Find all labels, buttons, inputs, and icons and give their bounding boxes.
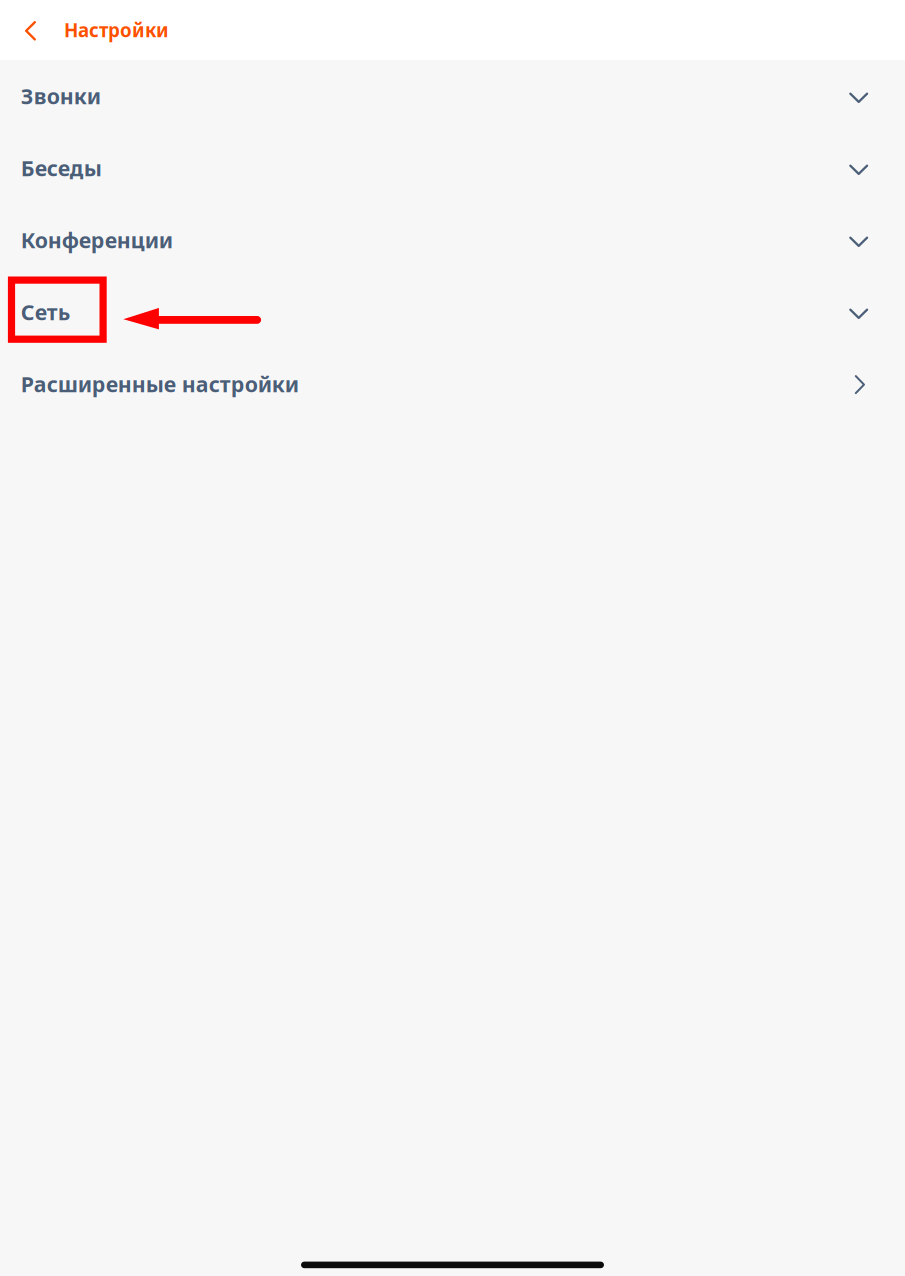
staticText: Сеть <box>21 298 71 326</box>
button[interactable]: Конференции <box>0 204 905 276</box>
staticText: Расширенные настройки <box>21 370 299 398</box>
button[interactable]: Беседы <box>0 132 905 204</box>
staticText: Конференции <box>21 226 173 254</box>
button[interactable]: Назад <box>0 0 61 60</box>
button[interactable]: Сеть <box>0 276 905 348</box>
button[interactable]: Звонки <box>0 60 905 132</box>
staticText: Настройки <box>64 18 169 42</box>
staticText: Беседы <box>21 154 102 182</box>
button[interactable]: Расширенные настройки <box>0 348 905 420</box>
staticText: Звонки <box>21 82 101 110</box>
